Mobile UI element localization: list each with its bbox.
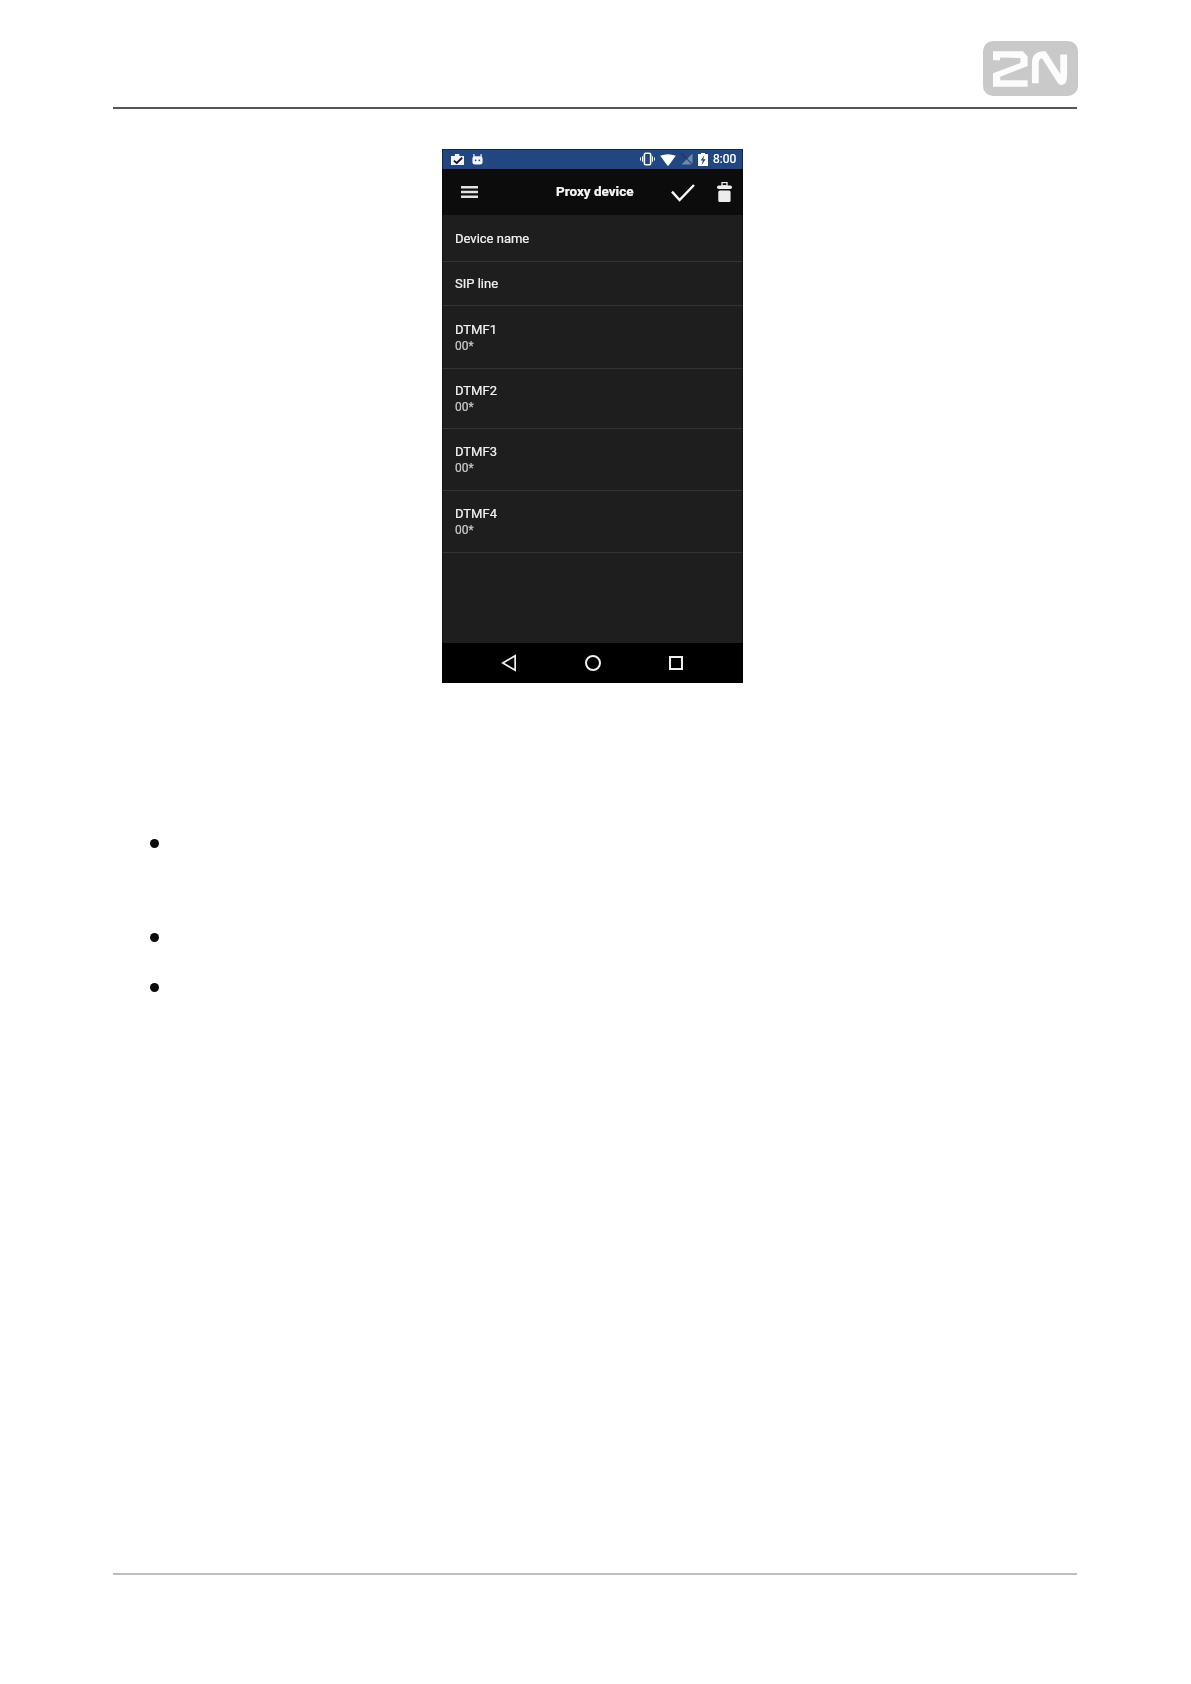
staticText: DTMF3 (455, 444, 497, 459)
button[interactable]: DTMF3 (442, 429, 743, 490)
button[interactable]: Recent apps (656, 643, 696, 683)
button[interactable]: Open navigation menu (453, 169, 485, 215)
staticText: Device name (455, 231, 530, 246)
staticText: DTMF1 (455, 322, 497, 337)
staticText: 00* (455, 339, 474, 353)
staticText: 00* (455, 400, 474, 414)
button[interactable]: DTMF1 (442, 306, 743, 368)
button[interactable]: Home (573, 643, 613, 683)
button[interactable]: SIP line (442, 262, 743, 305)
button[interactable]: Delete (705, 169, 743, 215)
button[interactable]: DTMF4 (442, 491, 743, 552)
button[interactable]: Save (662, 169, 704, 215)
staticText: 8:00 (713, 152, 737, 166)
staticText: 00* (455, 461, 474, 475)
staticText: 00* (455, 523, 474, 537)
staticText: DTMF2 (455, 383, 497, 398)
staticText: Proxy device (556, 183, 634, 199)
button[interactable]: DTMF2 (442, 369, 743, 428)
staticText: SIP line (455, 276, 499, 291)
button[interactable]: Back (490, 643, 530, 683)
staticText: DTMF4 (455, 506, 497, 521)
button[interactable]: Device name (442, 215, 743, 261)
